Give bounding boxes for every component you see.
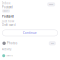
staticText: DRAFT <box>3 10 8 12</box>
staticText: Continue <box>23 31 37 35</box>
staticText: Done <box>49 3 53 5</box>
button[interactable]: Done <box>47 2 55 6</box>
staticText: Delivered <box>6 55 13 57</box>
staticText: Activity <box>2 47 11 51</box>
staticText: Draft saved <box>2 23 16 27</box>
staticText: Postcard <box>2 5 13 9</box>
staticText: Postcard <box>2 15 14 18</box>
staticText: Photos <box>7 41 17 45</box>
staticText: Just now <box>2 19 14 23</box>
staticText: Inbox <box>2 1 10 5</box>
button[interactable]: Continue <box>2 30 58 36</box>
staticText: View <box>51 42 54 44</box>
